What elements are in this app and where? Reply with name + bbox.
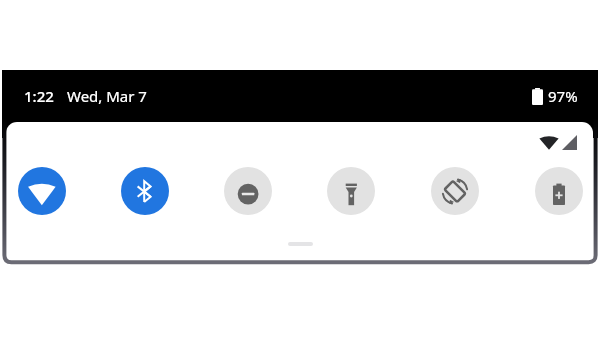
button[interactable]: Auto-rotate bbox=[431, 167, 479, 215]
button[interactable]: Wi-Fi bbox=[18, 167, 66, 215]
staticText: 1:22 bbox=[24, 86, 54, 106]
button[interactable]: Bluetooth bbox=[121, 167, 169, 215]
button[interactable]: Flashlight bbox=[327, 167, 375, 215]
button[interactable]: Battery Saver bbox=[535, 167, 583, 215]
staticText: Wed, Mar 7 bbox=[67, 86, 147, 106]
staticText: 97% bbox=[548, 86, 578, 106]
button[interactable]: Do Not Disturb bbox=[224, 167, 272, 215]
button[interactable]: Expand quick settings bbox=[288, 242, 313, 246]
